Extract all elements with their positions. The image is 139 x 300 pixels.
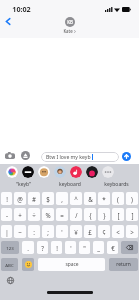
button[interactable]: < [112, 225, 124, 238]
button[interactable]: App [86, 166, 98, 178]
staticText: [ [117, 211, 120, 219]
staticText: = [60, 211, 64, 219]
button[interactable]: - [1, 208, 12, 221]
button[interactable]: Photo [54, 166, 66, 178]
staticText: 123 [6, 245, 14, 251]
button[interactable]: Back [1, 14, 14, 29]
button[interactable]: Memoji [38, 166, 50, 178]
button[interactable]: Apple Pay [22, 166, 34, 178]
staticText: . [27, 244, 29, 252]
button[interactable]: Btw I love my keyb [41, 152, 119, 162]
staticText: Kate [63, 28, 73, 34]
staticText: % [45, 211, 51, 219]
button[interactable]: ! [1, 192, 12, 205]
button[interactable]: Backspace [121, 241, 138, 254]
staticText: ) [131, 195, 133, 203]
button[interactable]: “keyb” [0, 178, 47, 191]
staticText: | [5, 228, 9, 236]
staticText: { [89, 211, 92, 219]
staticText: - [6, 211, 8, 219]
button[interactable]: ~ [14, 225, 26, 238]
button[interactable]: [ [112, 208, 124, 221]
button[interactable]: / [70, 208, 82, 221]
staticText: € [111, 244, 115, 252]
button[interactable]: = [56, 208, 68, 221]
staticText: space [65, 261, 79, 268]
button[interactable]: " [79, 241, 90, 254]
staticText: ! [56, 244, 58, 252]
button[interactable]: More [102, 166, 114, 178]
staticText: ^ [74, 195, 78, 203]
button[interactable]: * [98, 192, 110, 205]
staticText: ; [47, 228, 49, 236]
staticText: & [88, 195, 93, 203]
staticText: : [33, 228, 35, 236]
staticText: ¢ [102, 228, 106, 236]
button[interactable]: keyboard [47, 178, 93, 191]
staticText: } [103, 211, 106, 219]
staticText: ÷ [32, 211, 36, 219]
button[interactable]: Apps [18, 150, 32, 161]
staticText: * [102, 195, 106, 203]
button[interactable]: ' [56, 225, 68, 238]
button[interactable]: ] [126, 208, 138, 221]
button[interactable]: ; [42, 225, 54, 238]
button[interactable]: ? [37, 241, 48, 254]
button[interactable]: } [98, 208, 110, 221]
button[interactable]: ÷ [28, 208, 40, 221]
button[interactable]: Photos [6, 166, 18, 178]
button[interactable]: % [42, 208, 54, 221]
staticText: £ [88, 228, 92, 236]
button[interactable]: @ [14, 192, 26, 205]
staticText: > [130, 228, 134, 236]
staticText: ' [70, 244, 72, 252]
button[interactable]: : [28, 225, 40, 238]
button[interactable]: ABC [1, 258, 18, 271]
button[interactable]: € [107, 241, 118, 254]
button[interactable]: Emoji [22, 258, 34, 271]
button[interactable]: # [28, 192, 40, 205]
staticText: keyboard [59, 181, 81, 188]
staticText: $ [46, 195, 50, 203]
button[interactable]: ^ [70, 192, 82, 205]
button[interactable]: ( [112, 192, 124, 205]
button[interactable]: ¥ [70, 225, 82, 238]
button[interactable]: keyboards [93, 178, 139, 191]
button[interactable]: KB [63, 17, 76, 34]
button[interactable]: | [1, 225, 12, 238]
button[interactable]: ! [51, 241, 62, 254]
button[interactable]: Camera [3, 150, 17, 161]
button[interactable]: Switch keyboard [5, 275, 16, 286]
staticText: ABC [5, 262, 14, 268]
staticText: ~ [18, 228, 22, 236]
button[interactable]: _ [93, 241, 104, 254]
button[interactable]: { [84, 208, 96, 221]
staticText: KB [67, 19, 73, 25]
button[interactable]: + [14, 208, 26, 221]
staticText: + [18, 211, 22, 219]
button[interactable]: & [84, 192, 96, 205]
button[interactable]: ' [65, 241, 76, 254]
button[interactable]: ¢ [98, 225, 110, 238]
button[interactable]: Send [122, 152, 131, 161]
staticText: ( [117, 195, 119, 203]
staticText: ' [61, 228, 63, 236]
staticText: _ [97, 244, 100, 252]
button[interactable]: return [109, 258, 138, 271]
button[interactable]: $ [42, 192, 54, 205]
button[interactable]: £ [84, 225, 96, 238]
staticText: keyboards [104, 181, 129, 188]
staticText: ¥ [74, 228, 78, 236]
staticText: , [61, 195, 63, 203]
button[interactable]: ) [126, 192, 138, 205]
button[interactable]: , [56, 192, 68, 205]
staticText: 10:02 [12, 4, 31, 14]
button[interactable]: space [38, 258, 105, 271]
button[interactable]: 123 [1, 241, 19, 254]
button[interactable]: Music [70, 166, 82, 178]
staticText: “keyb” [16, 181, 31, 188]
staticText: Btw I love my keyb [46, 154, 91, 161]
button[interactable]: . [22, 241, 34, 254]
staticText: < [116, 228, 120, 236]
button[interactable]: > [126, 225, 138, 238]
